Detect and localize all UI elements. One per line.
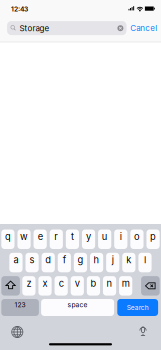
button[interactable]: y <box>82 229 95 249</box>
staticText: r <box>54 231 58 242</box>
staticText: o <box>134 231 140 242</box>
staticText: m <box>122 278 130 289</box>
button[interactable]: u <box>98 229 111 249</box>
staticText: g <box>77 254 83 266</box>
button[interactable]: k <box>122 253 135 272</box>
staticText: t <box>71 231 74 242</box>
staticText: 12:43 <box>11 5 28 13</box>
button[interactable]: q <box>1 229 14 249</box>
button[interactable]: w <box>17 229 31 249</box>
button[interactable]: Next keyboard <box>8 323 26 341</box>
button[interactable]: o <box>130 229 143 249</box>
staticText: x <box>42 278 47 289</box>
button[interactable]: v <box>71 276 84 296</box>
button[interactable]: s <box>25 253 39 272</box>
staticText: Storage <box>19 24 49 33</box>
button[interactable]: Shift <box>1 276 20 296</box>
button[interactable]: m <box>119 276 132 296</box>
staticText: y <box>86 231 91 242</box>
staticText: q <box>5 231 11 242</box>
staticText: w <box>20 231 28 242</box>
button[interactable]: Dictate <box>135 324 151 340</box>
button[interactable]: e <box>34 229 47 249</box>
button[interactable]: Clear text <box>114 22 126 34</box>
staticText: p <box>150 231 156 242</box>
staticText: b <box>90 278 96 289</box>
button[interactable]: i <box>114 229 127 249</box>
staticText: c <box>59 278 64 289</box>
staticText: z <box>26 278 31 289</box>
button[interactable]: c <box>55 276 68 296</box>
staticText: 123 <box>15 301 26 309</box>
staticText: Cancel <box>130 23 157 33</box>
staticText: s <box>30 254 35 266</box>
button[interactable]: b <box>87 276 100 296</box>
button[interactable]: h <box>90 253 103 272</box>
button[interactable]: n <box>103 276 116 296</box>
button[interactable]: 123 <box>1 299 39 316</box>
staticText: d <box>45 254 51 266</box>
button[interactable]: Search <box>117 299 158 316</box>
button[interactable]: l <box>138 253 152 272</box>
button[interactable]: x <box>38 276 52 296</box>
button[interactable]: f <box>58 253 71 272</box>
staticText: i <box>120 231 122 242</box>
staticText: f <box>63 254 66 266</box>
button[interactable]: g <box>74 253 87 272</box>
staticText: k <box>126 254 131 266</box>
button[interactable]: Delete <box>141 276 160 296</box>
button[interactable]: a <box>9 253 23 272</box>
staticText: h <box>94 254 100 266</box>
staticText: e <box>38 231 43 242</box>
button[interactable]: p <box>146 229 160 249</box>
button[interactable]: r <box>50 229 63 249</box>
staticText: v <box>75 278 80 289</box>
button[interactable]: j <box>106 253 119 272</box>
button[interactable]: d <box>42 253 55 272</box>
button[interactable]: Cancel <box>129 20 159 36</box>
staticText: a <box>13 254 18 266</box>
button[interactable]: z <box>22 276 35 296</box>
staticText: j <box>112 254 114 266</box>
staticText: n <box>106 278 112 289</box>
staticText: u <box>102 231 108 242</box>
staticText: Search <box>127 303 149 312</box>
button[interactable]: t <box>66 229 79 249</box>
button[interactable]: space <box>41 299 114 316</box>
staticText: l <box>144 254 146 266</box>
staticText: space <box>68 301 88 309</box>
